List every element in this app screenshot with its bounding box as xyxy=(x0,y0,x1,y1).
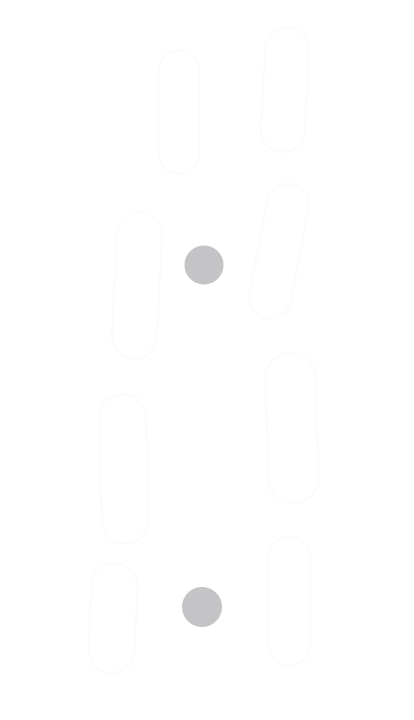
button[interactable]: Lower marker xyxy=(182,587,222,627)
button[interactable]: Upper marker xyxy=(184,245,223,284)
